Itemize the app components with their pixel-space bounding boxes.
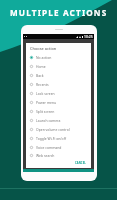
staticText: Power menu (36, 100, 57, 105)
staticText: Lock screen (36, 91, 55, 96)
button[interactable]: Recents (26, 80, 91, 89)
staticText: Voice command (36, 145, 62, 150)
button[interactable]: Launch camera (26, 116, 91, 125)
staticText: CANCEL (75, 161, 86, 165)
staticText: Back (36, 73, 44, 78)
staticText: Choose action (30, 46, 57, 51)
button[interactable]: Power menu (26, 98, 91, 107)
button[interactable]: Voice command (26, 143, 91, 152)
button[interactable]: Toggle Wi-Fi on/off (26, 134, 91, 143)
button[interactable]: Home (26, 62, 91, 71)
staticText: Open volume control (36, 127, 70, 132)
button[interactable]: Open volume control (26, 125, 91, 134)
staticText: 10:25 (84, 34, 93, 39)
staticText: Recents (36, 82, 49, 87)
staticText: MULTIPLE ACTIONS (10, 7, 108, 18)
staticText: No action (36, 55, 52, 60)
staticText: Web search (36, 153, 55, 158)
button[interactable]: Back (26, 71, 91, 80)
button[interactable]: Lock screen (26, 89, 91, 98)
button[interactable]: Web search (26, 152, 91, 159)
staticText: Home (36, 64, 46, 69)
staticText: Toggle Wi-Fi on/off (36, 136, 66, 141)
staticText: Split screen (36, 109, 55, 114)
staticText: Launch camera (36, 118, 61, 123)
button[interactable]: Split screen (26, 107, 91, 116)
button[interactable]: CANCEL (74, 160, 87, 166)
button[interactable]: No action (26, 53, 91, 62)
